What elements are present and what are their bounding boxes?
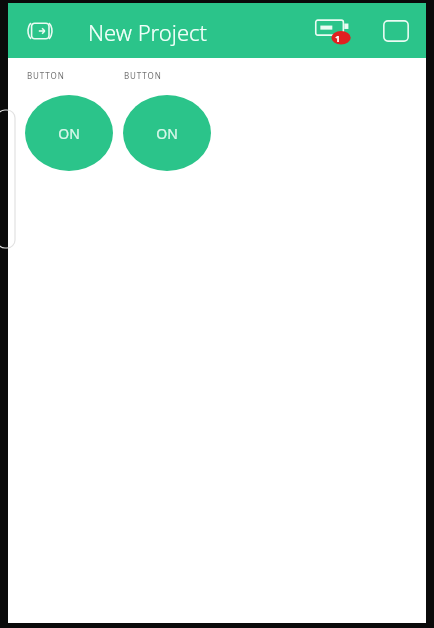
staticText: BUTTON [27,70,65,81]
staticText: ON [156,124,178,143]
button[interactable]: ON [123,95,211,171]
staticText: New Project [88,17,207,47]
staticText: 1 [335,32,341,44]
staticText: ON [58,124,80,143]
button[interactable]: Battery status, 1 alert [313,14,359,48]
button[interactable]: Connect device [25,16,55,46]
button[interactable]: Screen [380,17,412,45]
button[interactable]: ON [25,95,113,171]
staticText: BUTTON [124,70,162,81]
